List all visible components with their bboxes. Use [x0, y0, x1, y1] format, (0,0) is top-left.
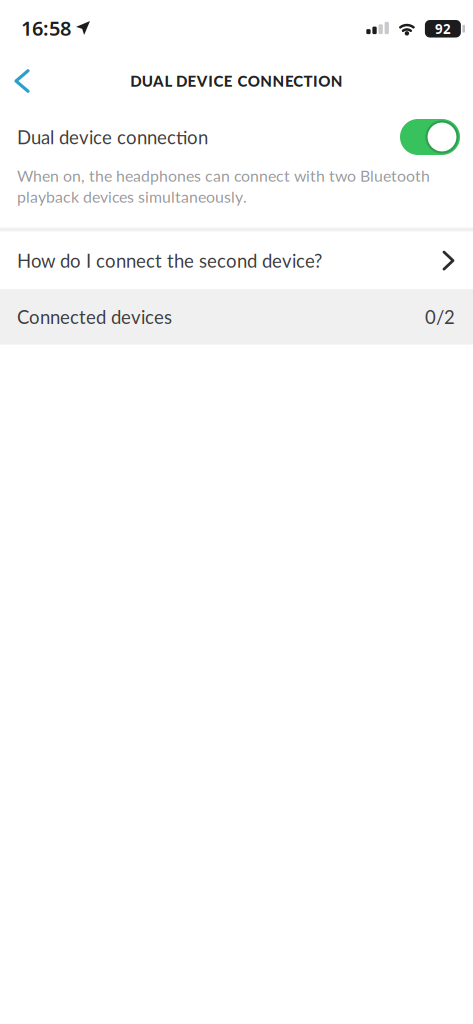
- button[interactable]: How do I connect the second device?: [0, 232, 473, 289]
- staticText: How do I connect the second device?: [17, 249, 322, 272]
- staticText: When on, the headphones can connect with…: [17, 166, 430, 206]
- button[interactable]: Dual device connection: [400, 119, 460, 155]
- staticText: DUAL DEVICE CONNECTION: [130, 72, 343, 90]
- button[interactable]: Connected devices: [0, 289, 473, 345]
- staticText: 92: [435, 20, 451, 38]
- staticText: 0/2: [425, 306, 455, 328]
- staticText: 16:58: [21, 15, 71, 41]
- staticText: Dual device connection: [17, 126, 208, 148]
- button[interactable]: Back: [0, 54, 46, 108]
- staticText: Connected devices: [17, 306, 172, 328]
